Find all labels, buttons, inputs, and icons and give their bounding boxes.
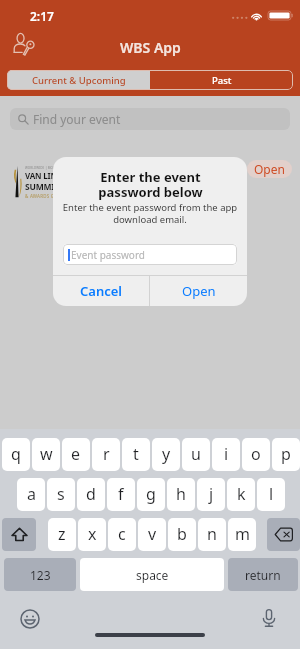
button[interactable]: o	[242, 438, 270, 471]
button[interactable]: m	[228, 518, 256, 551]
staticText: z	[58, 523, 66, 545]
staticText: r	[103, 443, 110, 465]
button[interactable]: z	[48, 518, 76, 551]
staticText: w	[40, 443, 53, 465]
staticText: a	[27, 483, 36, 505]
button[interactable]: f	[107, 478, 135, 511]
button[interactable]: Account login	[13, 32, 37, 56]
staticText: & AWARDS GALA	[25, 193, 64, 198]
staticText: d	[86, 483, 96, 505]
button[interactable]: 123	[4, 558, 76, 591]
button[interactable]: v	[138, 518, 166, 551]
staticText: s	[57, 483, 65, 505]
staticText: Find your event	[33, 111, 121, 127]
staticText: Past	[212, 74, 232, 87]
staticText: g	[146, 483, 156, 505]
button[interactable]: a	[17, 478, 45, 511]
button[interactable]: Open	[247, 160, 292, 178]
staticText: e	[71, 443, 81, 465]
staticText: v	[148, 523, 157, 545]
staticText: Enter the event password from the app do…	[59, 201, 241, 226]
staticText: Open	[182, 282, 216, 300]
button[interactable]: Backspace	[267, 518, 300, 551]
button[interactable]: space	[80, 558, 224, 591]
button[interactable]: Open	[150, 276, 247, 306]
staticText: m	[235, 523, 250, 545]
staticText: x	[88, 523, 97, 545]
button[interactable]: j	[197, 478, 225, 511]
button[interactable]: n	[198, 518, 226, 551]
button[interactable]: Past	[150, 70, 293, 90]
staticText: Enter the event password below	[98, 168, 203, 201]
button[interactable]: l	[257, 478, 285, 511]
staticText: p	[281, 443, 291, 465]
button[interactable]: Shift	[2, 518, 36, 551]
button[interactable]: e	[62, 438, 90, 471]
staticText: l	[269, 483, 274, 505]
staticText: c	[118, 523, 126, 545]
staticText: t	[133, 443, 139, 465]
button[interactable]: p	[272, 438, 300, 471]
button[interactable]: w	[32, 438, 60, 471]
button[interactable]: x	[78, 518, 106, 551]
button[interactable]: q	[2, 438, 30, 471]
staticText: 123	[30, 567, 51, 583]
staticText: VAN LINE	[25, 170, 61, 181]
staticText: k	[237, 483, 246, 505]
button[interactable]: u	[182, 438, 210, 471]
button[interactable]: Current & Upcoming	[7, 70, 150, 90]
staticText: WBS App	[120, 38, 181, 57]
staticText: Current & Upcoming	[32, 74, 126, 87]
staticText: 2:17	[30, 8, 54, 24]
button[interactable]: Event password	[63, 244, 237, 265]
button[interactable]: Find your event	[10, 108, 290, 130]
staticText: Open	[254, 161, 285, 177]
staticText: WORLDWIDE | MOVING | VAN LINE	[25, 166, 79, 170]
button[interactable]: Dictation	[259, 608, 279, 628]
button[interactable]: Cancel	[53, 276, 149, 306]
staticText: u	[191, 443, 201, 465]
button[interactable]: y	[152, 438, 180, 471]
button[interactable]: i	[212, 438, 240, 471]
staticText: n	[207, 523, 217, 545]
button[interactable]: h	[167, 478, 195, 511]
staticText: SUMMIT	[25, 181, 60, 193]
staticText: i	[224, 443, 229, 465]
staticText: h	[176, 483, 186, 505]
button[interactable]: b	[168, 518, 196, 551]
button[interactable]: r	[92, 438, 120, 471]
button[interactable]: Emoji keyboard	[20, 609, 40, 629]
staticText: b	[177, 523, 187, 545]
button[interactable]: g	[137, 478, 165, 511]
button[interactable]: return	[228, 558, 298, 591]
staticText: f	[118, 483, 124, 505]
button[interactable]: k	[227, 478, 255, 511]
button[interactable]: d	[77, 478, 105, 511]
button[interactable]: t	[122, 438, 150, 471]
staticText: Event password	[71, 248, 145, 262]
staticText: return	[245, 567, 281, 583]
staticText: space	[136, 567, 169, 583]
button[interactable]: s	[47, 478, 75, 511]
staticText: q	[11, 443, 21, 465]
staticText: o	[251, 443, 261, 465]
staticText: y	[162, 443, 171, 465]
button[interactable]: c	[108, 518, 136, 551]
staticText: j	[209, 483, 214, 505]
staticText: Cancel	[80, 282, 123, 300]
